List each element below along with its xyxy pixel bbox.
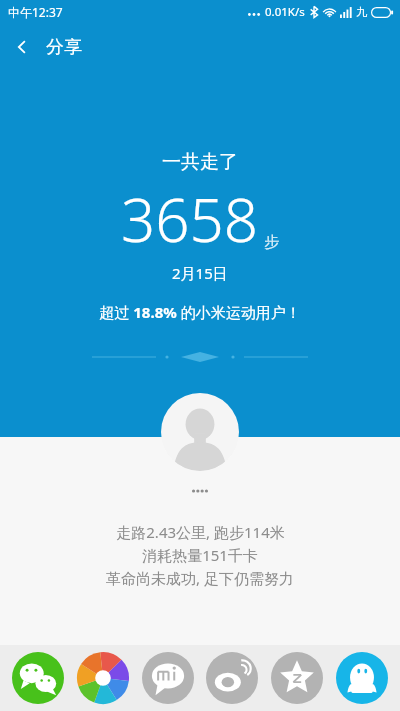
- staticText: 中午12:37: [8, 4, 63, 20]
- staticText: 0.01K/s: [265, 4, 305, 20]
- staticText: 超过 18.8% 的小米运动用户！: [99, 302, 301, 322]
- staticText: 一共走了: [162, 150, 238, 174]
- staticText: 3658: [121, 178, 259, 260]
- staticText: 分享: [46, 36, 82, 59]
- button[interactable]: 微信: [11, 651, 65, 705]
- staticText: 走路2.43公里, 跑步114米: [116, 522, 285, 542]
- staticText: 九: [356, 5, 367, 19]
- button[interactable]: QQ: [335, 651, 389, 705]
- staticText: 2月15日: [172, 263, 228, 283]
- button[interactable]: 用户头像: [161, 393, 239, 471]
- button[interactable]: 微博: [205, 651, 259, 705]
- staticText: 消耗热量151千卡: [142, 545, 258, 565]
- staticText: 步: [264, 233, 279, 252]
- staticText: 革命尚未成功, 足下仍需努力: [106, 568, 294, 588]
- button[interactable]: QQ空间: [270, 651, 324, 705]
- button[interactable]: 米聊: [141, 651, 195, 705]
- button[interactable]: 返回: [0, 25, 44, 69]
- button[interactable]: 朋友圈: [76, 651, 130, 705]
